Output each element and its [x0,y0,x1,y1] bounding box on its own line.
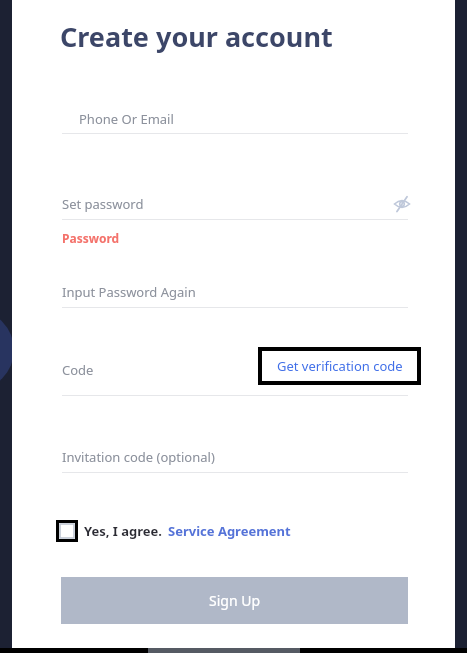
button[interactable]: Agree to terms [60,524,74,538]
staticText: Phone Or Email [79,110,174,128]
staticText: Invitation code (optional) [62,448,215,466]
staticText: Get verification code [277,357,403,375]
button[interactable]: Yes, I agree. [84,522,163,540]
staticText: Code [62,361,94,379]
button[interactable]: Get verification code [262,351,417,381]
staticText: Sign Up [209,591,261,610]
button[interactable]: Service Agreement [168,522,291,540]
staticText: Yes, I agree. [84,522,163,540]
button[interactable]: Show password [384,186,420,222]
staticText: Create your account [60,18,333,55]
staticText: Service Agreement [168,522,291,540]
button[interactable]: Sign Up [61,577,408,624]
staticText: Set password [62,195,144,213]
staticText: Password [62,230,120,246]
staticText: Input Password Again [62,283,196,301]
